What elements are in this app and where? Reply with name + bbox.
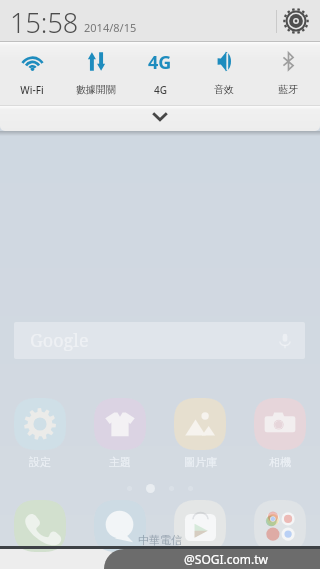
button[interactable]: Collapse panel [0, 106, 320, 131]
staticText: 4G [154, 83, 167, 97]
button[interactable]: Settings [283, 8, 309, 34]
staticText: 藍牙 [278, 83, 298, 96]
button[interactable]: 圖片庫 [160, 398, 240, 469]
button[interactable]: 音效 [192, 42, 256, 106]
staticText: 中華電信 [138, 533, 182, 547]
staticText: Wi-Fi [20, 83, 44, 97]
staticText: 4G [148, 50, 172, 73]
button[interactable]: 數據開關 [64, 42, 128, 106]
staticText: 相機 [269, 455, 291, 469]
staticText: 15:58 [10, 4, 79, 41]
button[interactable]: Google apps [240, 500, 320, 552]
staticText: 2014/8/15 [84, 20, 137, 35]
staticText: 設定 [29, 455, 51, 469]
staticText: 圖片庫 [184, 455, 217, 469]
staticText: 主題 [109, 455, 131, 469]
button[interactable]: 設定 [0, 398, 80, 469]
button[interactable]: Wi-Fi [0, 42, 64, 106]
button[interactable]: 主題 [80, 398, 160, 469]
button[interactable]: Phone [0, 500, 80, 552]
button[interactable]: Voice search [277, 333, 293, 349]
button[interactable]: 相機 [240, 398, 320, 469]
staticText: Google [30, 328, 89, 353]
staticText: 數據開關 [76, 83, 116, 96]
button[interactable]: 藍牙 [256, 42, 320, 106]
staticText: 音效 [214, 83, 234, 96]
staticText: @SOGI.com.tw [184, 551, 268, 567]
button[interactable]: 4G [128, 42, 192, 106]
button[interactable]: Play Store [160, 500, 240, 552]
button[interactable]: Messages [80, 500, 160, 552]
